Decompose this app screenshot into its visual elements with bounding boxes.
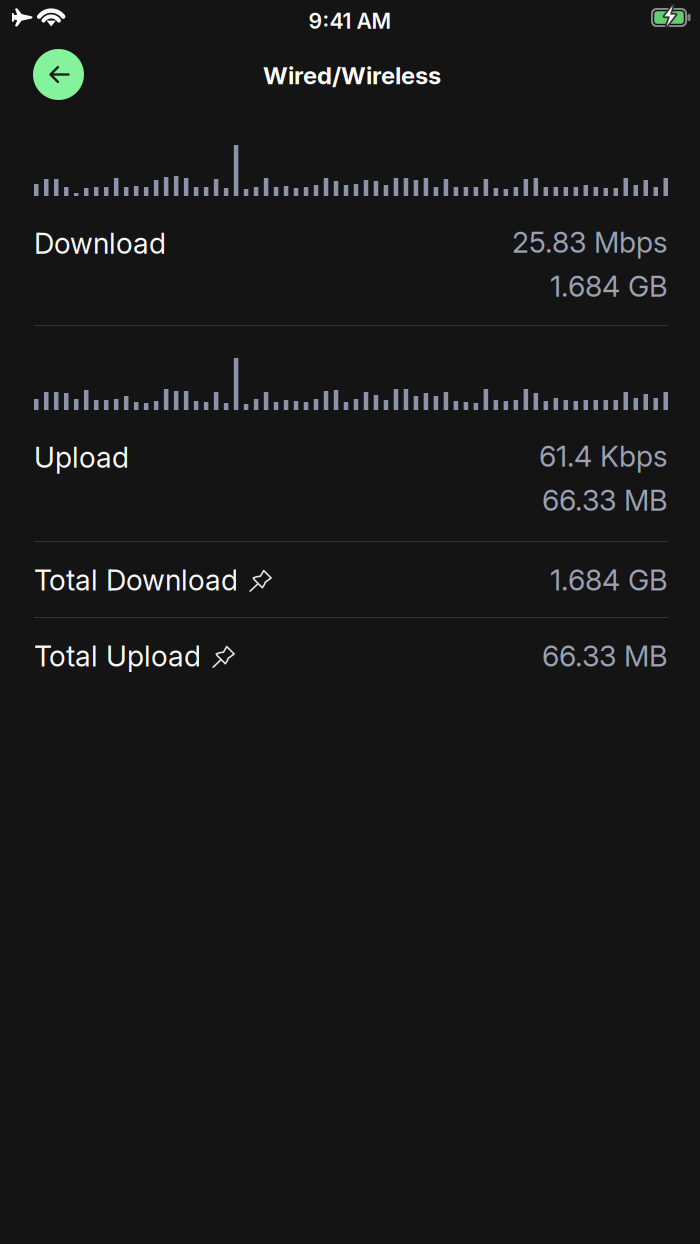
- staticText: Download: [34, 226, 166, 261]
- staticText: 66.33 MB: [542, 639, 668, 673]
- button[interactable]: Total Upload: [34, 618, 668, 694]
- staticText: Upload: [34, 440, 129, 475]
- staticText: 66.33 MB: [542, 483, 668, 518]
- button[interactable]: Total Download: [34, 542, 668, 618]
- staticText: Total Upload: [34, 639, 201, 673]
- button[interactable]: Back: [33, 49, 84, 100]
- staticText: 1.684 GB: [550, 269, 668, 304]
- staticText: Wired/Wireless: [263, 61, 441, 90]
- staticText: 9:41 AM: [308, 8, 391, 34]
- staticText: 1.684 GB: [550, 563, 668, 597]
- staticText: 25.83 Mbps: [512, 225, 668, 260]
- staticText: 61.4 Kbps: [539, 439, 668, 474]
- staticText: Total Download: [34, 563, 238, 597]
